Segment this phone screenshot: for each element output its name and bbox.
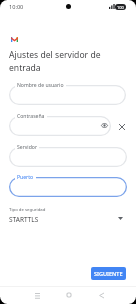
staticText: Contraseña	[17, 113, 45, 120]
staticText: Servidor	[17, 144, 37, 151]
button[interactable]: Mostrar contraseña	[98, 119, 111, 132]
staticText: 10:00	[9, 3, 24, 11]
button[interactable]: Atrás	[94, 288, 108, 302]
staticText: Tipo de seguridad	[9, 206, 46, 212]
staticText: 100	[117, 5, 124, 10]
staticText: STARTTLS	[9, 215, 39, 224]
staticText: Puerto	[17, 174, 34, 181]
staticText: Nombre de usuario	[17, 82, 64, 89]
button[interactable]: Borrar	[115, 120, 128, 133]
button[interactable]: Nombre de usuario	[9, 85, 126, 105]
button[interactable]: SIGUIENTE	[91, 267, 126, 280]
staticText: SIGUIENTE	[94, 270, 123, 277]
button[interactable]: Contraseña	[9, 116, 111, 136]
button[interactable]: Recientes	[30, 288, 44, 302]
button[interactable]: Tipo de seguridad	[0, 203, 136, 227]
button[interactable]: Inicio	[62, 288, 76, 302]
button[interactable]: Servidor	[9, 147, 127, 167]
button[interactable]: Puerto	[9, 177, 127, 197]
staticText: Ajustes del servidor de entrada	[9, 49, 109, 74]
